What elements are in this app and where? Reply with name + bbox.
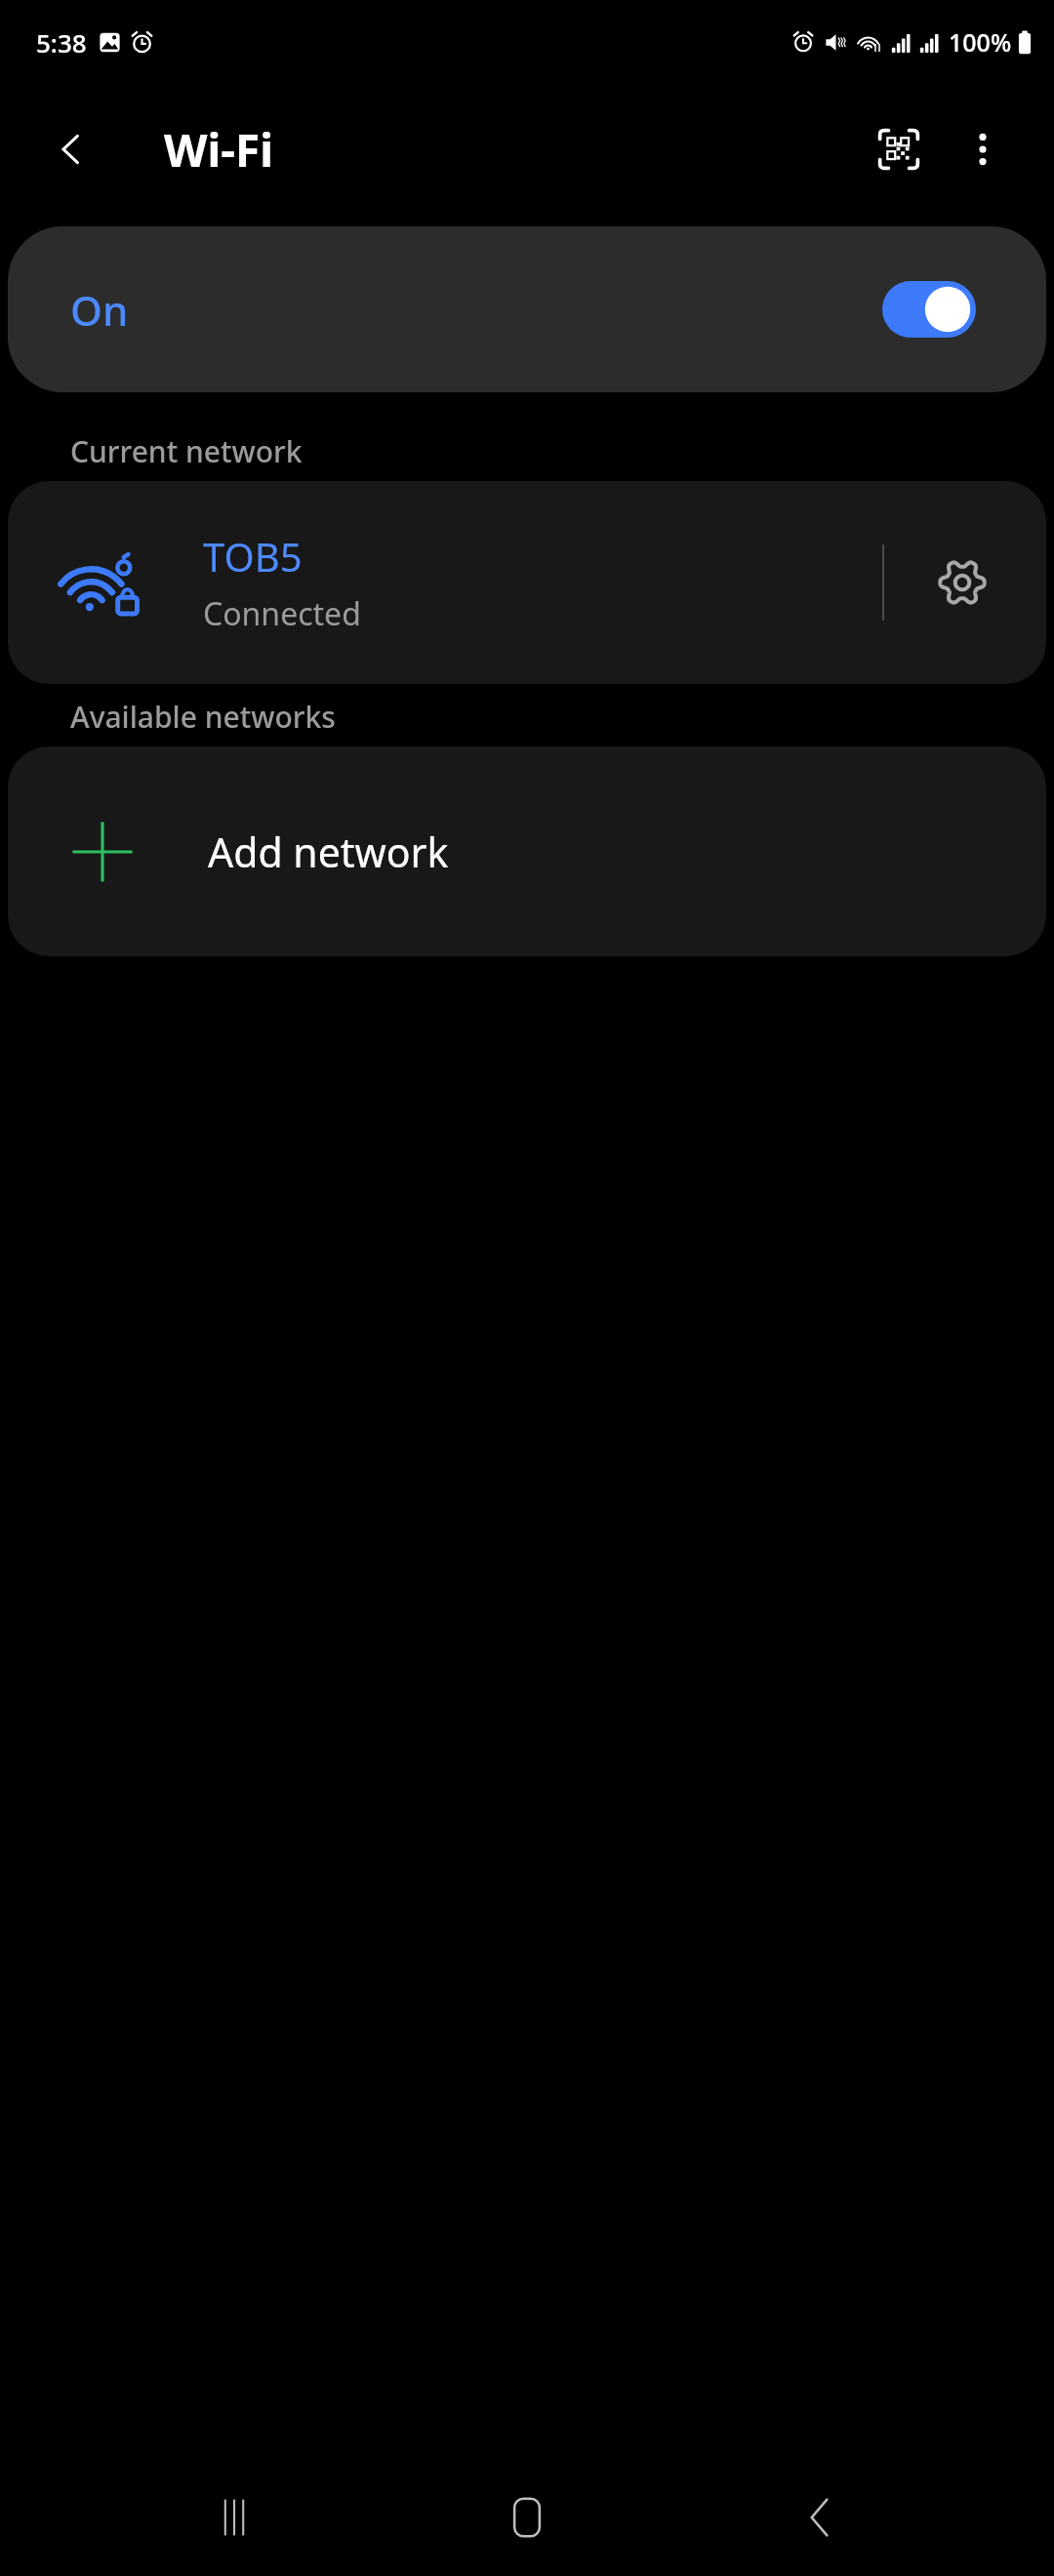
staticText: Available networks: [70, 697, 336, 737]
staticText: Connected: [203, 592, 361, 635]
staticText: 5:38: [36, 25, 87, 60]
staticText: Wi-Fi: [164, 119, 273, 181]
button[interactable]: Home: [468, 2459, 586, 2576]
button[interactable]: More options: [941, 107, 1025, 191]
button[interactable]: Network settings: [913, 534, 1011, 631]
button[interactable]: Scan QR code: [857, 107, 941, 191]
staticText: TOB5: [203, 530, 303, 583]
staticText: Add network: [208, 825, 449, 879]
button[interactable]: Add network: [8, 746, 1046, 956]
button[interactable]: Back: [41, 119, 101, 180]
staticText: 100%: [949, 25, 1012, 59]
staticText: On: [70, 282, 129, 338]
button[interactable]: Recent apps: [176, 2459, 293, 2576]
button[interactable]: TOB5: [8, 481, 1046, 684]
button[interactable]: Back: [761, 2459, 878, 2576]
button[interactable]: On: [8, 226, 1046, 392]
staticText: Current network: [70, 431, 303, 471]
